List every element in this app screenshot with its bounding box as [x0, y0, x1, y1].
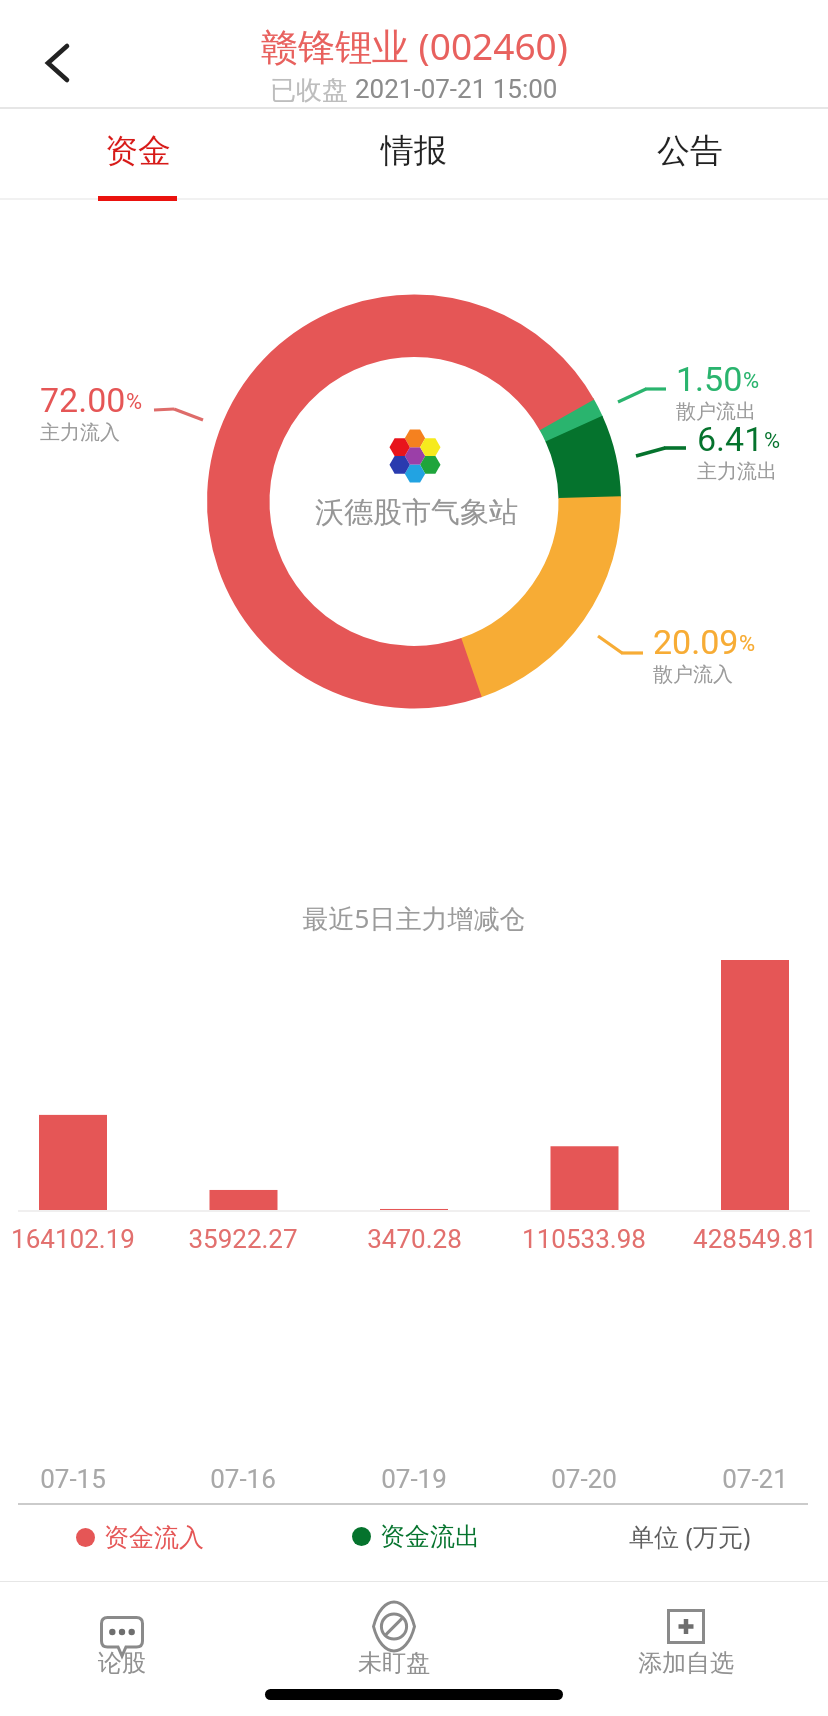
- staticText: 论股: [98, 1648, 146, 1678]
- staticText: 已收盘: [270, 71, 355, 107]
- staticText: 散户流入: [653, 662, 733, 687]
- staticText: 07-16: [210, 1464, 276, 1494]
- staticText: 主力流出: [697, 459, 777, 484]
- staticText: 赣锋锂业 (002460): [261, 20, 568, 71]
- staticText: 散户流出: [676, 399, 756, 424]
- staticText: 428549.81: [693, 1224, 817, 1254]
- staticText: 20.09: [653, 622, 739, 662]
- staticText: %: [764, 428, 781, 454]
- staticText: 资金: [105, 130, 171, 172]
- staticText: 资金流入: [104, 1522, 204, 1553]
- staticText: 3470.28: [367, 1224, 462, 1254]
- button[interactable]: 资金: [0, 109, 276, 207]
- staticText: 35922.27: [188, 1224, 298, 1254]
- staticText: 最近5日主力增减仓: [0, 900, 828, 936]
- staticText: 主力流入: [40, 420, 120, 445]
- staticText: 沃德股市气象站: [315, 494, 518, 531]
- staticText: 07-19: [381, 1464, 447, 1494]
- button[interactable]: Watch market: [309, 1582, 479, 1692]
- button[interactable]: 情报: [276, 109, 552, 207]
- staticText: 07-20: [551, 1464, 617, 1494]
- staticText: 情报: [381, 130, 447, 172]
- staticText: 资金流出: [380, 1521, 480, 1552]
- button[interactable]: 公告: [552, 109, 828, 207]
- staticText: 1.50: [676, 359, 743, 399]
- staticText: 添加自选: [638, 1648, 734, 1678]
- button[interactable]: Back: [14, 24, 104, 102]
- staticText: 公告: [657, 130, 723, 172]
- staticText: 2021-07-21 15:00: [355, 74, 558, 104]
- button[interactable]: Discuss stock: [37, 1582, 207, 1692]
- staticText: 72.00: [40, 380, 126, 420]
- staticText: 07-21: [722, 1464, 788, 1494]
- staticText: %: [126, 389, 143, 415]
- staticText: 单位 (万元): [629, 1519, 751, 1553]
- staticText: 110533.98: [522, 1224, 646, 1254]
- staticText: 6.41: [697, 419, 764, 459]
- staticText: 07-15: [40, 1464, 106, 1494]
- staticText: 164102.19: [11, 1224, 135, 1254]
- staticText: %: [743, 368, 760, 394]
- staticText: 未盯盘: [358, 1648, 430, 1678]
- staticText: %: [739, 631, 756, 657]
- button[interactable]: Add to watchlist: [601, 1582, 771, 1692]
